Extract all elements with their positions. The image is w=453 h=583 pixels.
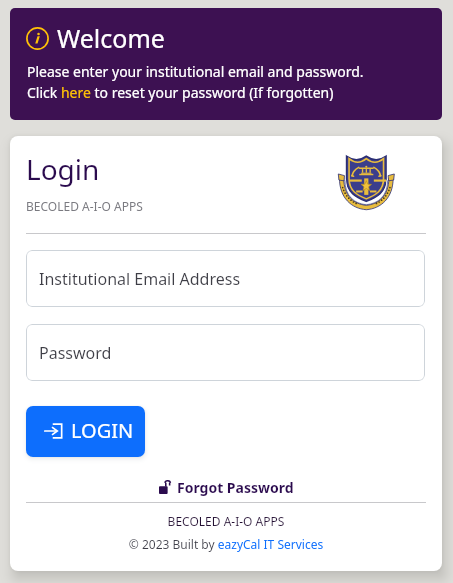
staticText: Login bbox=[26, 150, 100, 188]
button[interactable]: Forgot Password bbox=[10, 476, 442, 498]
other: Sign in bbox=[44, 423, 63, 439]
button[interactable]: Sign in bbox=[26, 406, 145, 457]
staticText: Institutional Email Address bbox=[39, 268, 241, 290]
staticText: Click here to reset your password (If fo… bbox=[27, 83, 334, 102]
staticText: Please enter your institutional email an… bbox=[27, 62, 364, 81]
button[interactable]: Password bbox=[26, 324, 425, 381]
button[interactable]: Institutional Email Address bbox=[26, 250, 425, 307]
staticText: Password bbox=[39, 342, 112, 364]
button[interactable]: here - reset your password bbox=[62, 84, 90, 103]
staticText: © 2023 Built by eazyCal IT Services bbox=[10, 536, 442, 552]
staticText: BECOLED A-I-O APPS bbox=[10, 513, 442, 529]
staticText: Welcome bbox=[57, 21, 165, 55]
staticText: BECOLED A-I-O APPS bbox=[26, 198, 143, 214]
staticText: LOGIN bbox=[71, 417, 134, 444]
staticText: Forgot Password bbox=[177, 478, 294, 497]
